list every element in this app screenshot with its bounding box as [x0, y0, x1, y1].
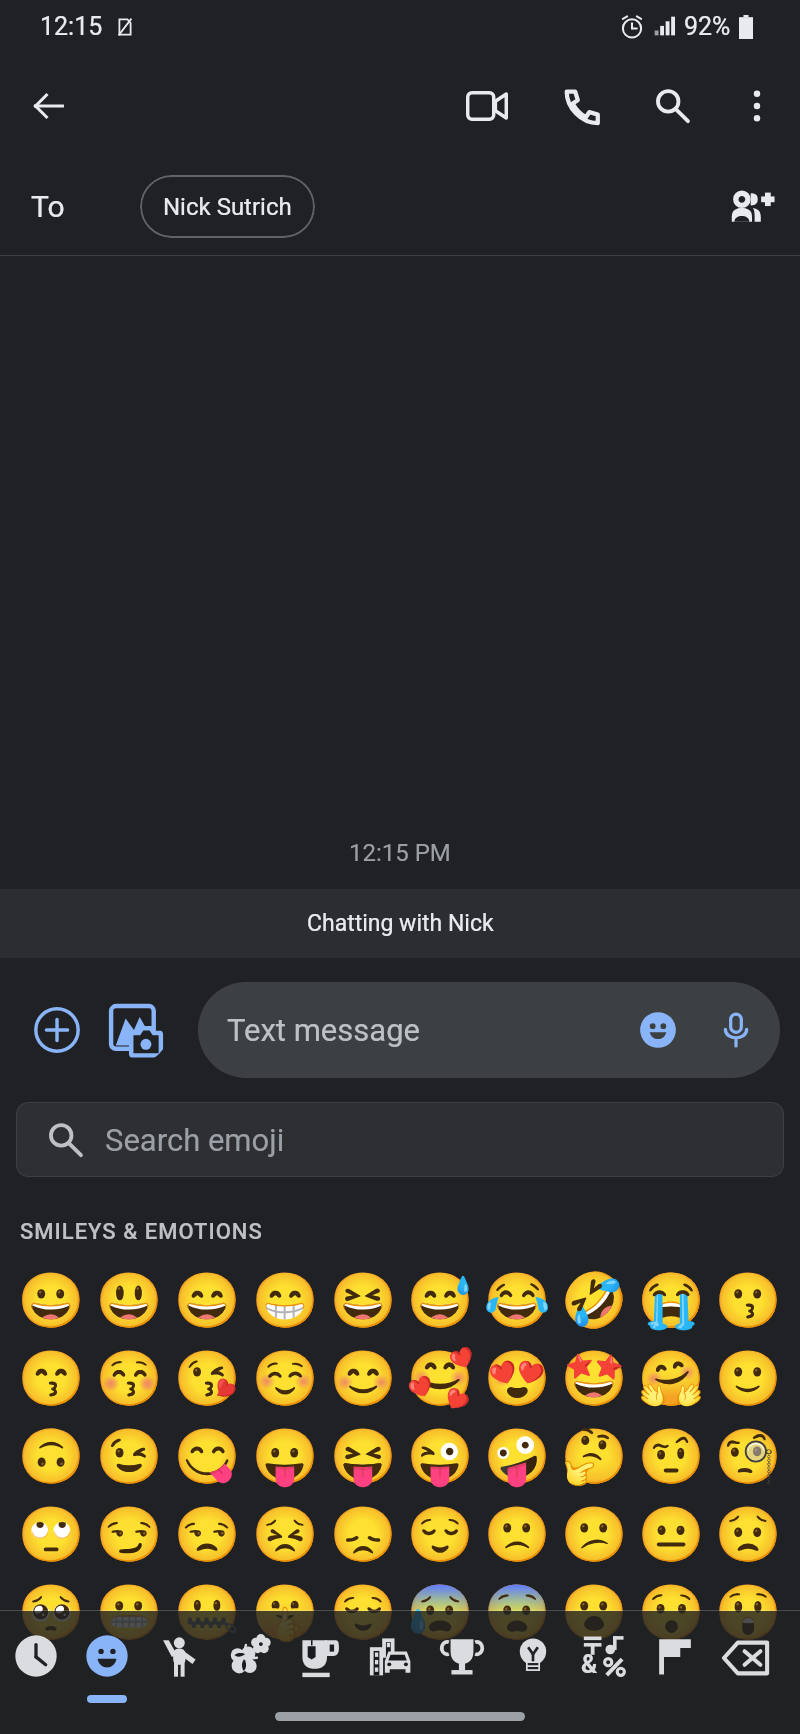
- button[interactable]: Call: [552, 77, 610, 135]
- staticText: ☺️: [251, 1347, 319, 1410]
- button[interactable]: 😰: [401, 1573, 478, 1651]
- staticText: 🤫: [251, 1581, 319, 1644]
- button[interactable]: 🧐: [709, 1417, 786, 1495]
- staticText: 😘: [173, 1347, 241, 1410]
- staticText: Chatting with Nick: [307, 910, 494, 937]
- button[interactable]: Travel and places: [355, 1611, 426, 1705]
- button[interactable]: 😁: [246, 1261, 324, 1339]
- button[interactable]: 😆: [324, 1261, 401, 1339]
- staticText: 😍: [483, 1347, 551, 1410]
- staticText: 🤔: [560, 1425, 628, 1488]
- button[interactable]: Text message: [198, 982, 780, 1078]
- button[interactable]: 😃: [90, 1261, 168, 1339]
- button[interactable]: 🤐: [168, 1573, 246, 1651]
- staticText: 😕: [560, 1503, 628, 1566]
- staticText: 🙂: [714, 1347, 782, 1410]
- button[interactable]: 😜: [401, 1417, 478, 1495]
- button[interactable]: 😂: [478, 1261, 555, 1339]
- button[interactable]: Symbols: [568, 1611, 639, 1705]
- button[interactable]: Add attachment: [21, 994, 93, 1066]
- button[interactable]: Add people: [724, 179, 780, 235]
- button[interactable]: 😚: [90, 1339, 168, 1417]
- button[interactable]: 🤗: [632, 1339, 709, 1417]
- button[interactable]: Objects: [497, 1611, 568, 1705]
- staticText: SMILEYS & EMOTIONS: [20, 1219, 263, 1245]
- button[interactable]: 🙄: [12, 1495, 90, 1573]
- button[interactable]: 🤨: [632, 1417, 709, 1495]
- button[interactable]: 😀: [12, 1261, 90, 1339]
- button[interactable]: 😒: [168, 1495, 246, 1573]
- button[interactable]: 🙁: [478, 1495, 555, 1573]
- button[interactable]: Activities: [426, 1611, 497, 1705]
- button[interactable]: 🤣: [555, 1261, 632, 1339]
- staticText: 😭: [637, 1269, 705, 1332]
- button[interactable]: 😝: [324, 1417, 401, 1495]
- button[interactable]: 😌: [401, 1495, 478, 1573]
- button[interactable]: 😏: [90, 1495, 168, 1573]
- button[interactable]: 😐: [632, 1495, 709, 1573]
- button[interactable]: 😉: [90, 1417, 168, 1495]
- staticText: 🙃: [17, 1425, 85, 1488]
- button[interactable]: 🤪: [478, 1417, 555, 1495]
- button[interactable]: Recent: [0, 1611, 71, 1705]
- button[interactable]: 😙: [12, 1339, 90, 1417]
- button[interactable]: 😅: [401, 1261, 478, 1339]
- button[interactable]: 😣: [246, 1495, 324, 1573]
- button[interactable]: Nick Sutrich: [140, 175, 315, 238]
- staticText: 🤗: [637, 1347, 705, 1410]
- staticText: 😋: [173, 1425, 241, 1488]
- button[interactable]: 😌: [324, 1573, 401, 1651]
- button[interactable]: 😄: [168, 1261, 246, 1339]
- button[interactable]: 😨: [478, 1573, 555, 1651]
- button[interactable]: 😭: [632, 1261, 709, 1339]
- staticText: 🥰: [406, 1347, 474, 1410]
- button[interactable]: Voice message: [708, 1002, 764, 1058]
- staticText: 😗: [714, 1269, 782, 1332]
- staticText: Text message: [227, 1012, 420, 1048]
- staticText: 12:15: [40, 12, 103, 41]
- button[interactable]: 🤔: [555, 1417, 632, 1495]
- button[interactable]: 😮: [555, 1573, 632, 1651]
- button[interactable]: 😍: [478, 1339, 555, 1417]
- button[interactable]: 🙂: [709, 1339, 786, 1417]
- button[interactable]: 😟: [709, 1495, 786, 1573]
- button[interactable]: 😯: [632, 1573, 709, 1651]
- button[interactable]: 🥺: [12, 1573, 90, 1651]
- staticText: 😄: [173, 1269, 241, 1332]
- button[interactable]: 😗: [709, 1261, 786, 1339]
- button[interactable]: People: [142, 1611, 213, 1705]
- button[interactable]: Food and drink: [284, 1611, 355, 1705]
- button[interactable]: 😊: [324, 1339, 401, 1417]
- staticText: 🤣: [560, 1269, 628, 1332]
- button[interactable]: Search: [643, 77, 701, 135]
- button[interactable]: Video call: [458, 77, 516, 135]
- staticText: To: [31, 189, 65, 224]
- button[interactable]: 😋: [168, 1417, 246, 1495]
- button[interactable]: 😲: [709, 1573, 786, 1651]
- staticText: 😣: [251, 1503, 319, 1566]
- staticText: &: [581, 1650, 598, 1679]
- button[interactable]: Animals and nature: [213, 1611, 284, 1705]
- staticText: 🙁: [483, 1503, 551, 1566]
- button[interactable]: 😞: [324, 1495, 401, 1573]
- button[interactable]: Back: [18, 75, 80, 137]
- button[interactable]: 😬: [90, 1573, 168, 1651]
- button[interactable]: ☺️: [246, 1339, 324, 1417]
- button[interactable]: More options: [728, 77, 786, 135]
- staticText: 12:15 PM: [349, 839, 451, 867]
- button[interactable]: 😘: [168, 1339, 246, 1417]
- staticText: 🧐: [714, 1425, 782, 1488]
- button[interactable]: 🤩: [555, 1339, 632, 1417]
- button[interactable]: 😕: [555, 1495, 632, 1573]
- button[interactable]: Backspace: [710, 1611, 781, 1705]
- button[interactable]: Flags: [639, 1611, 710, 1705]
- button[interactable]: 🥰: [401, 1339, 478, 1417]
- button[interactable]: Smileys and emotions: [71, 1611, 142, 1705]
- button[interactable]: Gallery and camera: [101, 996, 169, 1064]
- button[interactable]: 🤫: [246, 1573, 324, 1651]
- button[interactable]: 😛: [246, 1417, 324, 1495]
- button[interactable]: Emoji: [630, 1002, 686, 1058]
- button[interactable]: 🙃: [12, 1417, 90, 1495]
- button[interactable]: Search emoji: [16, 1102, 784, 1177]
- staticText: 😮: [560, 1581, 628, 1644]
